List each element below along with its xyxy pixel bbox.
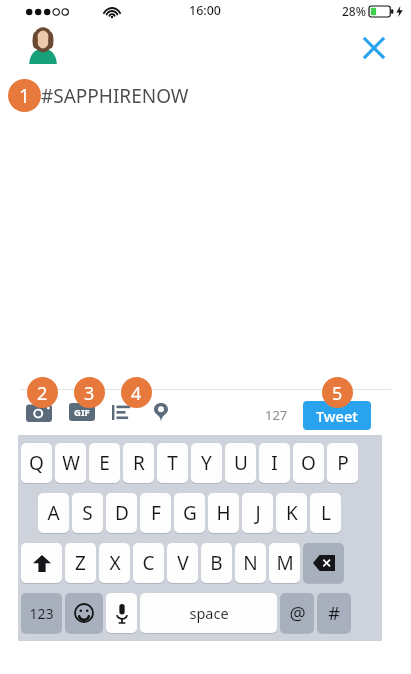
staticText: E <box>99 450 110 476</box>
button[interactable]: P <box>327 443 358 483</box>
staticText: 1 <box>19 83 30 109</box>
button[interactable]: B <box>201 543 232 583</box>
staticText: S <box>82 500 93 526</box>
staticText: C <box>142 550 155 576</box>
button[interactable]: G <box>174 493 205 533</box>
staticText: R <box>133 450 145 476</box>
button[interactable]: L <box>310 493 341 533</box>
staticText: B <box>210 550 223 576</box>
button[interactable] <box>303 543 344 583</box>
button[interactable]: Add GIF <box>69 403 95 421</box>
staticText: A <box>47 500 60 526</box>
button[interactable]: K <box>276 493 307 533</box>
staticText: T <box>167 450 178 476</box>
staticText: V <box>177 550 189 576</box>
staticText: L <box>321 500 331 526</box>
staticText: space <box>189 603 229 623</box>
staticText: Tweet <box>316 406 358 426</box>
button[interactable]: 123 <box>21 593 62 633</box>
button[interactable]: # <box>317 593 351 633</box>
button[interactable]: O <box>293 443 324 483</box>
staticText: 127 <box>265 406 288 424</box>
button[interactable]: R <box>123 443 154 483</box>
button[interactable]: Profile <box>28 26 58 64</box>
staticText: 3 <box>84 381 95 405</box>
staticText: P <box>337 450 349 476</box>
staticText: Y <box>201 450 212 476</box>
button[interactable]: @ <box>280 593 314 633</box>
button[interactable]: Tweet <box>303 401 371 430</box>
staticText: H <box>216 500 231 526</box>
staticText: 28% <box>342 3 366 19</box>
staticText: 5 <box>332 381 343 405</box>
button[interactable]: T <box>157 443 188 483</box>
staticText: Q <box>29 450 44 476</box>
staticText: Z <box>75 550 86 576</box>
staticText: K <box>286 500 298 526</box>
button[interactable]: Close <box>357 31 391 65</box>
button[interactable]: U <box>225 443 256 483</box>
button[interactable]: Add poll <box>109 399 135 425</box>
staticText: W <box>62 450 80 476</box>
button[interactable]: space <box>140 593 277 633</box>
staticText: 16:00 <box>189 2 222 19</box>
staticText: U <box>234 450 248 476</box>
button[interactable] <box>21 543 62 583</box>
staticText: G <box>183 500 197 526</box>
button[interactable]: Q <box>21 443 52 483</box>
button[interactable]: C <box>133 543 164 583</box>
button[interactable]: J <box>242 493 273 533</box>
staticText: F <box>151 500 161 526</box>
button[interactable]: D <box>106 493 137 533</box>
button[interactable]: Add location <box>148 399 174 425</box>
button[interactable]: F <box>140 493 171 533</box>
staticText: D <box>115 500 129 526</box>
staticText: # <box>328 601 340 626</box>
button[interactable] <box>106 593 137 633</box>
button[interactable]: W <box>55 443 86 483</box>
staticText: 2 <box>37 381 48 405</box>
staticText: @ <box>289 601 306 626</box>
staticText: I <box>271 450 278 476</box>
button[interactable]: Add photo <box>22 399 56 425</box>
button[interactable]: I <box>259 443 290 483</box>
staticText: X <box>109 550 121 576</box>
button[interactable]: M <box>269 543 300 583</box>
staticText: #SAPPHIRENOW <box>41 83 189 109</box>
staticText: J <box>255 500 261 526</box>
button[interactable]: S <box>72 493 103 533</box>
button[interactable]: Y <box>191 443 222 483</box>
button[interactable]: V <box>167 543 198 583</box>
button[interactable]: Z <box>65 543 96 583</box>
button[interactable]: N <box>235 543 266 583</box>
button[interactable]: E <box>89 443 120 483</box>
button[interactable]: X <box>99 543 130 583</box>
button[interactable]: H <box>208 493 239 533</box>
button[interactable] <box>65 593 103 633</box>
staticText: 123 <box>29 604 54 623</box>
staticText: GIF <box>74 406 90 419</box>
staticText: M <box>276 550 294 576</box>
staticText: 4 <box>131 381 142 405</box>
staticText: O <box>301 450 316 476</box>
staticText: N <box>243 550 258 576</box>
button[interactable]: A <box>38 493 69 533</box>
